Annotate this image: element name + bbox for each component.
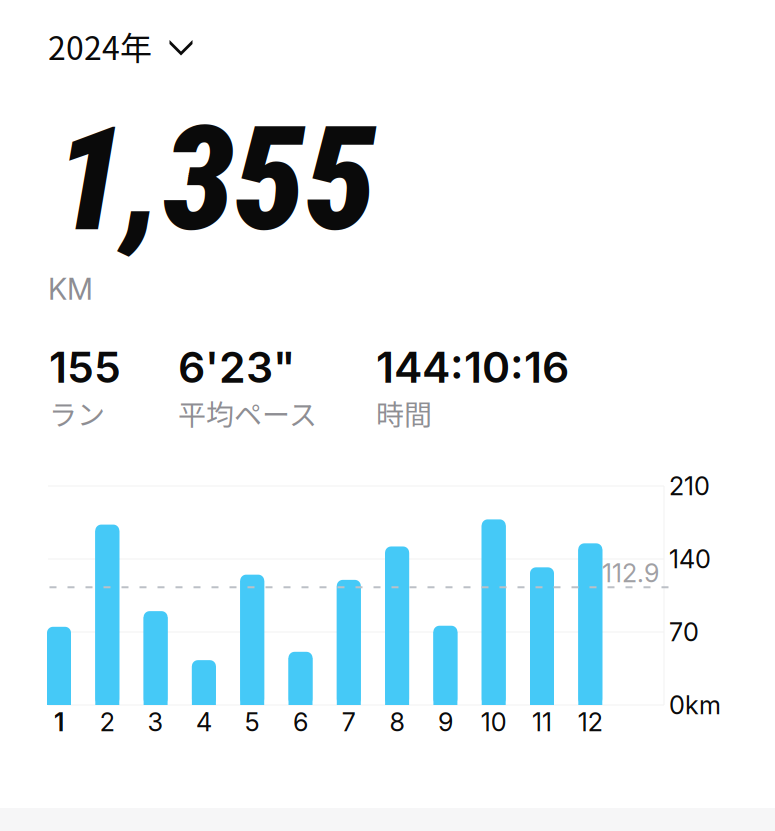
staticText: 70: [669, 617, 699, 647]
staticText: 9: [438, 707, 453, 737]
staticText: 112.9: [602, 558, 659, 588]
staticText: 3: [148, 707, 164, 737]
staticText: 210: [669, 471, 710, 501]
staticText: 11: [532, 707, 552, 737]
staticText: 10: [481, 707, 507, 737]
staticText: 1: [54, 707, 64, 737]
staticText: 144:10:16: [376, 341, 569, 393]
staticText: KM: [48, 271, 93, 307]
staticText: ラン: [49, 393, 105, 433]
staticText: 2024年: [48, 23, 152, 69]
staticText: 155: [49, 341, 121, 393]
staticText: 140: [669, 544, 711, 574]
staticText: 7: [342, 707, 356, 737]
staticText: 時間: [376, 393, 432, 433]
staticText: 12: [578, 707, 603, 737]
staticText: 4: [196, 707, 212, 737]
staticText: 8: [390, 707, 405, 737]
staticText: 1,355: [54, 96, 376, 264]
staticText: 平均ペース: [178, 393, 317, 433]
button[interactable]: 2024年: [0, 9, 218, 83]
staticText: 2: [100, 707, 115, 737]
staticText: 0km: [669, 690, 721, 720]
staticText: 5: [245, 707, 260, 737]
staticText: 6: [293, 707, 308, 737]
staticText: 6'23": [178, 341, 295, 393]
